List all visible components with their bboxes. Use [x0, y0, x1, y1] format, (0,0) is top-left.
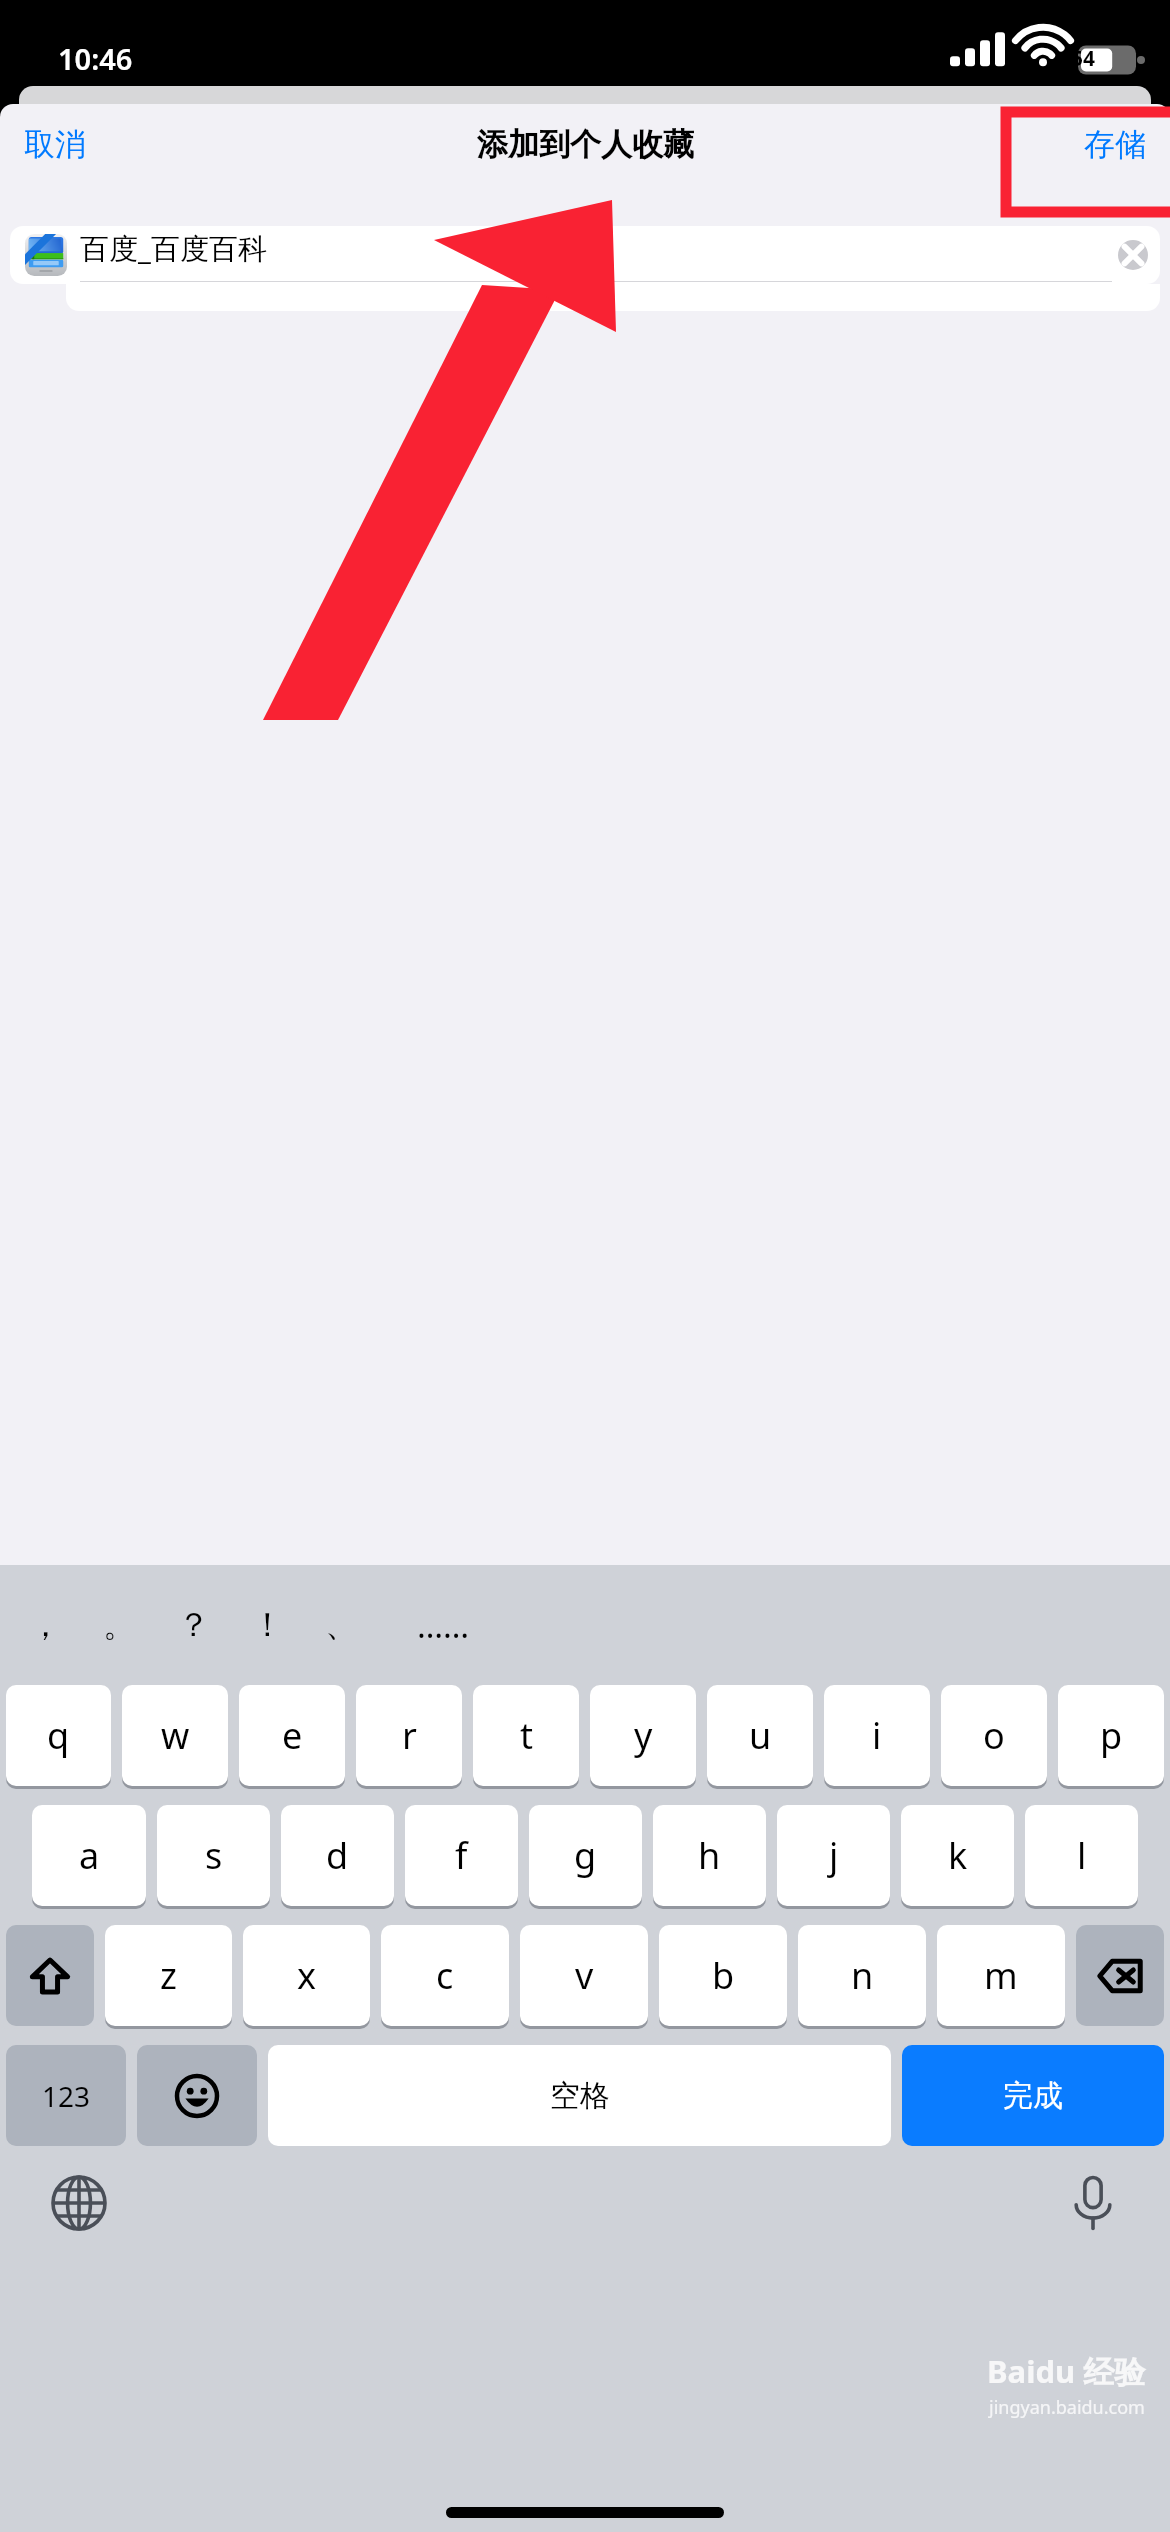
staticText: 存储 — [1084, 125, 1146, 164]
button[interactable]: d — [281, 1805, 394, 1906]
button[interactable]: j — [777, 1805, 890, 1906]
staticText: ？ — [177, 1604, 210, 1646]
staticText: e — [282, 1711, 303, 1760]
button[interactable]: g — [529, 1805, 642, 1906]
staticText: q — [47, 1711, 70, 1760]
staticText: 完成 — [1003, 2077, 1063, 2115]
staticText: ！ — [251, 1604, 284, 1646]
staticText: t — [520, 1711, 533, 1760]
button[interactable]: 存储 — [1060, 113, 1170, 176]
button[interactable]: l — [1025, 1805, 1138, 1906]
staticText: 、 — [325, 1604, 358, 1646]
button[interactable]: 空格 — [268, 2045, 891, 2146]
button[interactable]: 。 — [82, 1565, 156, 1685]
button[interactable]: 清除 — [1112, 234, 1154, 276]
button[interactable]: …… — [378, 1565, 508, 1685]
button[interactable]: 语音输入 — [1058, 2168, 1128, 2238]
button[interactable]: e — [239, 1685, 345, 1786]
staticText: u — [749, 1711, 772, 1760]
staticText: y — [634, 1711, 653, 1760]
staticText: 取消 — [24, 125, 86, 164]
staticText: jingyan.baidu.com — [989, 2395, 1145, 2420]
staticText: m — [984, 1951, 1018, 2000]
staticText: …… — [417, 1603, 470, 1648]
button[interactable]: q — [6, 1685, 111, 1786]
button[interactable]: 123 — [6, 2045, 126, 2146]
button[interactable]: 完成 — [902, 2045, 1164, 2146]
staticText: r — [402, 1711, 417, 1760]
staticText: o — [983, 1711, 1005, 1760]
button[interactable]: n — [798, 1925, 926, 2026]
button[interactable]: k — [901, 1805, 1014, 1906]
button[interactable]: y — [590, 1685, 696, 1786]
staticText: w — [161, 1711, 190, 1760]
staticText: ， — [29, 1604, 62, 1646]
button[interactable]: f — [405, 1805, 518, 1906]
staticText: 添加到个人收藏 — [477, 125, 694, 164]
staticText: v — [575, 1951, 594, 2000]
staticText: s — [205, 1831, 223, 1880]
button[interactable]: r — [356, 1685, 462, 1786]
button[interactable]: x — [243, 1925, 370, 2026]
button[interactable]: m — [937, 1925, 1065, 2026]
staticText: 。 — [103, 1604, 136, 1646]
staticText: b — [712, 1951, 735, 2000]
staticText: i — [872, 1711, 882, 1760]
button[interactable]: 、 — [304, 1565, 378, 1685]
button[interactable]: z — [105, 1925, 232, 2026]
button[interactable]: t — [473, 1685, 579, 1786]
staticText: c — [436, 1951, 454, 2000]
staticText: 百度_百度百科 — [80, 228, 267, 268]
staticText: x — [297, 1951, 317, 2000]
button[interactable]: a — [32, 1805, 146, 1906]
staticText: g — [574, 1831, 597, 1880]
button[interactable]: 百度_百度百科 — [10, 226, 1160, 284]
button[interactable]: u — [707, 1685, 813, 1786]
staticText: 123 — [42, 2077, 91, 2115]
button[interactable]: Shift — [6, 1925, 94, 2026]
button[interactable]: ， — [8, 1565, 82, 1685]
button[interactable]: o — [941, 1685, 1047, 1786]
staticText: 空格 — [550, 2077, 610, 2115]
staticText: z — [160, 1951, 177, 2000]
button[interactable]: ！ — [230, 1565, 304, 1685]
button[interactable]: p — [1058, 1685, 1164, 1786]
button[interactable]: i — [824, 1685, 930, 1786]
button[interactable]: 表情 — [137, 2045, 257, 2146]
staticText: 54 — [1071, 44, 1096, 73]
staticText: h — [698, 1831, 721, 1880]
staticText: 10:46 — [58, 39, 133, 78]
staticText: k — [948, 1831, 968, 1880]
staticText: d — [326, 1831, 349, 1880]
button[interactable]: s — [157, 1805, 270, 1906]
button[interactable]: 退格 — [1076, 1925, 1164, 2026]
button[interactable]: c — [381, 1925, 509, 2026]
button[interactable]: h — [653, 1805, 766, 1906]
staticText: a — [79, 1831, 100, 1880]
staticText: f — [455, 1831, 468, 1880]
staticText: Baidu 经验 — [987, 2350, 1146, 2392]
button[interactable]: 切换键盘 — [44, 2168, 114, 2238]
button[interactable]: w — [122, 1685, 228, 1786]
staticText: n — [851, 1951, 874, 2000]
staticText: p — [1100, 1711, 1123, 1760]
button[interactable]: v — [520, 1925, 648, 2026]
button[interactable]: b — [659, 1925, 787, 2026]
staticText: l — [1077, 1831, 1087, 1880]
button[interactable]: 取消 — [0, 113, 110, 176]
button[interactable]: ？ — [156, 1565, 230, 1685]
staticText: j — [829, 1831, 839, 1880]
